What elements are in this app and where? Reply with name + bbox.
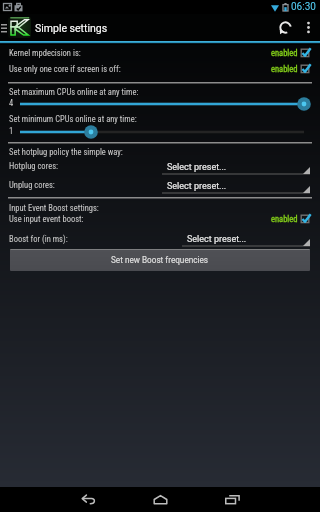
button[interactable]: Select preset... — [182, 233, 310, 247]
staticText: Set minimum CPUs online at any time: — [9, 114, 137, 124]
staticText: Boost for (in ms): — [9, 234, 68, 244]
button[interactable]: Home — [124, 487, 196, 512]
button[interactable]: Restore defaults — [272, 14, 299, 41]
staticText: enabled — [271, 64, 298, 74]
staticText: Use only one core if screen is off: — [9, 64, 121, 74]
button[interactable]: More options — [299, 14, 317, 41]
staticText: Set hotplug policy the simple way: — [9, 147, 123, 157]
staticText: Set new Boost frequencies — [111, 255, 209, 265]
staticText: Select preset... — [167, 181, 227, 192]
staticText: Input Event Boost settings: — [9, 203, 99, 213]
button[interactable]: Navigation menu — [0, 16, 8, 40]
staticText: Kernel mpdecision is: — [9, 48, 81, 58]
button[interactable]: Select preset... — [162, 161, 310, 175]
button[interactable]: Use only one core if screen is off: — [0, 62, 320, 75]
button[interactable]: Use input event boost: — [0, 212, 320, 225]
button[interactable]: Recent apps — [196, 487, 268, 512]
button[interactable]: Select preset... — [162, 180, 310, 194]
staticText: 4 — [9, 98, 14, 108]
staticText: Use input event boost: — [9, 214, 84, 224]
button[interactable]: Slider — [0, 90, 320, 110]
staticText: Simple settings — [35, 22, 108, 34]
staticText: 1 — [9, 126, 14, 136]
staticText: Unplug cores: — [9, 180, 55, 190]
staticText: 06:30 — [291, 1, 316, 13]
staticText: Select preset... — [187, 234, 247, 245]
button[interactable]: Slider — [0, 118, 320, 138]
staticText: Hotplug cores: — [9, 161, 58, 171]
button[interactable]: Back — [52, 487, 124, 512]
staticText: Select preset... — [167, 162, 227, 173]
staticText: enabled — [271, 214, 298, 224]
staticText: Set maximum CPUs online at any time: — [9, 87, 139, 97]
button[interactable]: Kernel mpdecision is: — [0, 46, 320, 59]
staticText: enabled — [271, 48, 298, 58]
button[interactable]: Set new Boost frequencies — [10, 249, 310, 271]
